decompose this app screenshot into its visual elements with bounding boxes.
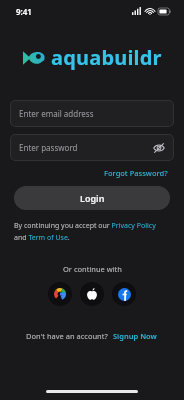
button[interactable]: Sign in with Google (48, 282, 72, 306)
staticText: Login (80, 192, 105, 204)
button[interactable]: Enter email address (10, 100, 174, 127)
button[interactable]: Sign in with Facebook (112, 282, 136, 306)
staticText: Or continue with (63, 264, 122, 274)
staticText: Forgot Password? (104, 168, 168, 178)
button[interactable]: Forgot Password? (102, 167, 170, 179)
staticText: Don't have an account? (26, 331, 112, 341)
staticText: 9:41 (16, 6, 32, 17)
staticText: Enter email address (19, 108, 94, 119)
button[interactable]: Login (14, 186, 170, 210)
staticText: Enter password (19, 142, 78, 153)
staticText: Signup Now (113, 331, 157, 341)
button[interactable]: Signup Now (112, 330, 158, 342)
staticText: By continuing you accept our Privacy Pol… (14, 221, 170, 242)
button[interactable]: Enter password (10, 134, 174, 161)
button[interactable]: Sign in with Apple (80, 282, 104, 306)
button[interactable]: Show password (150, 139, 168, 157)
staticText: aquabuildr (51, 44, 162, 71)
